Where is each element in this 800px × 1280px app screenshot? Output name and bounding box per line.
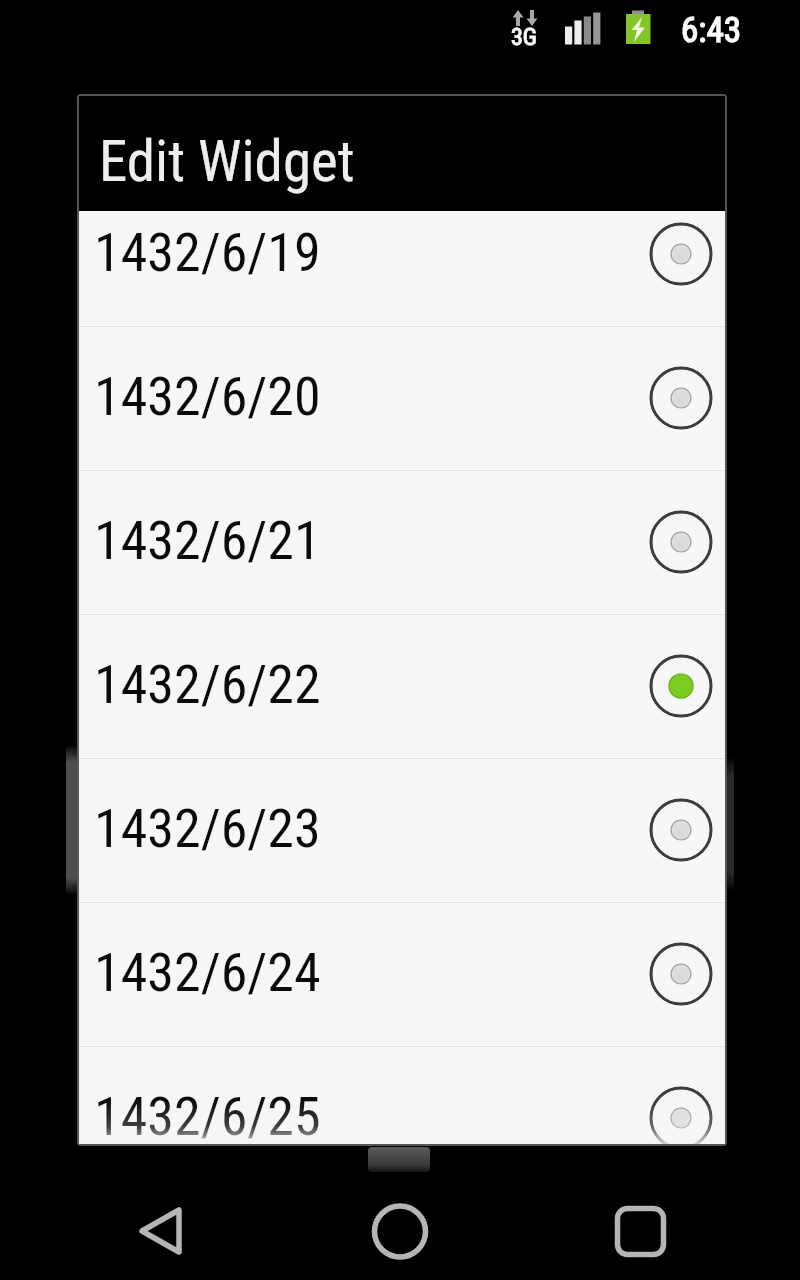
staticText: 1432/6/23 bbox=[94, 797, 321, 860]
staticText: 1432/6/19 bbox=[94, 221, 321, 284]
staticText: Edit Widget bbox=[99, 128, 355, 195]
button[interactable]: Back bbox=[100, 1185, 220, 1275]
button[interactable]: 1432/6/20 bbox=[79, 327, 725, 469]
staticText: 1432/6/24 bbox=[94, 941, 321, 1004]
staticText: 1432/6/25 bbox=[94, 1085, 321, 1144]
button[interactable]: 1432/6/22 bbox=[79, 615, 725, 757]
staticText: 3G bbox=[511, 23, 538, 51]
button[interactable]: 1432/6/25 bbox=[79, 1047, 725, 1144]
button[interactable]: 1432/6/19 bbox=[79, 211, 725, 325]
staticText: 6:43 bbox=[681, 10, 742, 51]
staticText: 1432/6/21 bbox=[94, 509, 321, 572]
staticText: 1432/6/22 bbox=[94, 653, 321, 716]
staticText: 1432/6/20 bbox=[94, 365, 321, 428]
button[interactable]: 1432/6/23 bbox=[79, 759, 725, 901]
button[interactable]: Home bbox=[340, 1185, 460, 1275]
button[interactable]: 1432/6/24 bbox=[79, 903, 725, 1045]
button[interactable]: Recent apps bbox=[580, 1185, 700, 1275]
button[interactable]: 1432/6/21 bbox=[79, 471, 725, 613]
